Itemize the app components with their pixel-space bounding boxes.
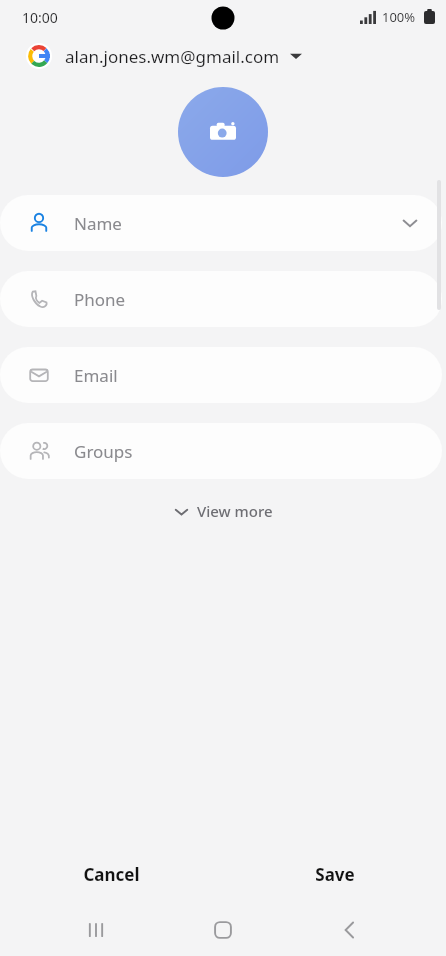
staticText: View more [197,501,273,521]
staticText: Name [74,212,122,235]
button[interactable]: Save [223,849,446,899]
button[interactable]: Phone [0,271,442,327]
button[interactable]: Email [0,347,442,403]
staticText: 100% [382,8,416,26]
button[interactable]: Cancel [0,849,223,899]
button[interactable]: alan.jones.wm@gmail.com [0,34,446,78]
button[interactable]: Recents [65,904,127,956]
staticText: Save [315,863,355,886]
staticText: Phone [74,288,126,311]
staticText: Email [74,364,118,387]
button[interactable]: Groups [0,423,442,479]
staticText: Cancel [83,863,140,886]
button[interactable]: Name [0,195,442,251]
staticText: Groups [74,440,133,463]
staticText: alan.jones.wm@gmail.com [65,45,280,68]
staticText: 10:00 [22,8,58,27]
button[interactable]: Add photo [178,87,268,177]
button[interactable]: Home [192,904,254,956]
button[interactable]: Back [319,904,381,956]
button[interactable]: View more [163,497,283,525]
